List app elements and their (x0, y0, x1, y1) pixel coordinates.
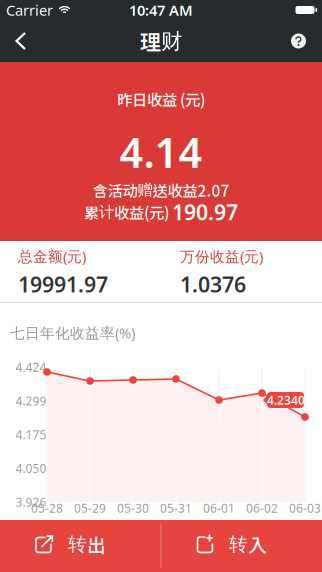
staticText: 转入 (229, 530, 267, 557)
staticText: 10:47 AM (129, 0, 193, 20)
staticText: 昨日收益 (元) (117, 88, 205, 110)
staticText: 1.0376 (180, 270, 246, 298)
staticText: 转出 (68, 530, 106, 557)
staticText: Carrier (6, 0, 53, 20)
staticText: 理财 (140, 26, 182, 56)
staticText: 05-29 (74, 500, 106, 516)
button[interactable]: Back (0, 19, 27, 62)
button[interactable]: Help (291, 21, 322, 60)
staticText: 累计收益(元) (84, 201, 169, 223)
staticText: 4.050 (15, 460, 46, 476)
staticText: 05-30 (117, 500, 149, 516)
staticText: 19991.97 (18, 270, 108, 298)
button[interactable]: 转出 (0, 520, 161, 572)
staticText: 06-03 (289, 500, 321, 516)
staticText: 05-31 (160, 500, 192, 516)
staticText: 含活动赠送收益2.07 (92, 179, 229, 201)
staticText: 06-01 (203, 500, 235, 516)
staticText: 4.175 (15, 426, 46, 442)
staticText: 05-28 (31, 500, 63, 516)
staticText: 3.926 (15, 494, 46, 510)
staticText: 4.2340 (267, 392, 305, 408)
staticText: 4.14 (119, 125, 202, 179)
staticText: 七日年化收益率(%) (10, 323, 135, 342)
staticText: 190.97 (172, 198, 238, 226)
staticText: 06-02 (246, 500, 278, 516)
staticText: 总金额(元) (18, 247, 86, 266)
button[interactable]: 转入 (161, 520, 322, 572)
staticText: 4.299 (15, 393, 46, 409)
staticText: 4.424 (15, 359, 46, 375)
staticText: 万份收益(元) (180, 247, 263, 266)
